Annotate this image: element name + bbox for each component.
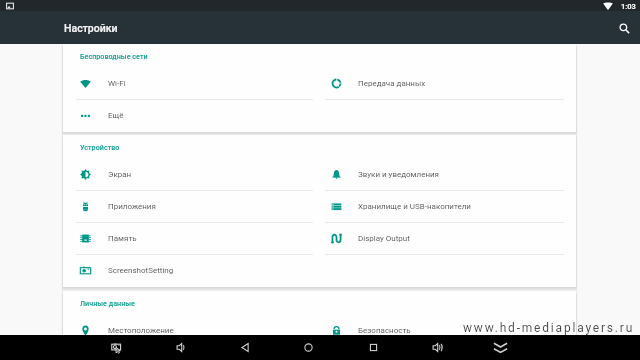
staticText: Экран <box>108 170 132 179</box>
button[interactable]: Местоположение <box>63 315 319 335</box>
staticText: Личные данные <box>80 299 135 307</box>
button[interactable]: Volume up <box>425 335 450 360</box>
button[interactable]: Back <box>233 335 258 360</box>
button[interactable]: Приложения <box>63 191 319 222</box>
staticText: Местоположение <box>108 326 174 335</box>
button[interactable]: Память <box>63 223 319 254</box>
staticText: Беспроводные сети <box>80 52 148 60</box>
button[interactable]: Home <box>296 335 321 360</box>
button[interactable]: Display Output <box>319 223 576 254</box>
staticText: Хранилище и USB-накопители <box>358 202 471 211</box>
staticText: www.hd-mediaplayers.ru <box>463 321 635 335</box>
staticText: Display Output <box>358 234 410 243</box>
button[interactable]: Wi-Fi <box>63 68 319 99</box>
button[interactable]: ScreenshotSetting <box>63 255 319 286</box>
button[interactable]: Screenshot <box>104 335 129 360</box>
staticText: Память <box>108 234 137 243</box>
button[interactable]: Search <box>613 17 635 39</box>
staticText: 1:03 <box>621 2 636 11</box>
button[interactable]: Recent apps <box>361 335 386 360</box>
staticText: Wi-Fi <box>108 79 126 88</box>
button[interactable]: Volume down <box>169 335 194 360</box>
button[interactable]: Хранилище и USB-накопители <box>319 191 576 222</box>
staticText: Передача данных <box>358 79 426 88</box>
button[interactable]: Hide navigation bar <box>488 335 513 360</box>
button[interactable]: Звуки и уведомления <box>319 159 576 190</box>
button[interactable]: Экран <box>63 159 319 190</box>
button[interactable]: Передача данных <box>319 68 576 99</box>
staticText: Звуки и уведомления <box>358 170 440 179</box>
button[interactable]: Ещё <box>63 100 319 131</box>
staticText: Настройки <box>64 22 118 34</box>
staticText: Безопасность <box>358 326 411 335</box>
staticText: Приложения <box>108 202 156 211</box>
button[interactable]: Безопасность <box>319 315 576 335</box>
staticText: ScreenshotSetting <box>108 266 174 275</box>
staticText: Устройство <box>80 143 120 151</box>
staticText: Ещё <box>108 111 124 120</box>
